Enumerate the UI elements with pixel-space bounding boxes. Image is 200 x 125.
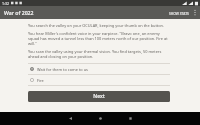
staticText: SHOW STATS <box>169 11 189 15</box>
button[interactable]: Recent apps <box>119 112 141 125</box>
staticText: War of 2022 <box>4 9 34 16</box>
staticText: 1:32 <box>2 1 9 6</box>
button[interactable]: Back <box>59 112 81 125</box>
staticText: You scan the valley using your thermal v… <box>28 49 170 59</box>
button[interactable]: Home <box>89 112 111 125</box>
staticText: Next <box>93 93 105 100</box>
button[interactable]: Wait for them to come to us <box>28 64 170 74</box>
button[interactable]: SHOW STATS <box>167 9 191 17</box>
staticText: You hear Miller's confident voice in you… <box>28 31 170 46</box>
staticText: Fire <box>37 78 44 83</box>
button[interactable]: Fire <box>28 75 170 85</box>
button[interactable]: More options <box>191 6 198 19</box>
staticText: You search the valley on your OCULAR, ke… <box>28 23 165 28</box>
button[interactable]: Next <box>28 91 170 102</box>
staticText: Wait for them to come to us <box>37 67 88 72</box>
